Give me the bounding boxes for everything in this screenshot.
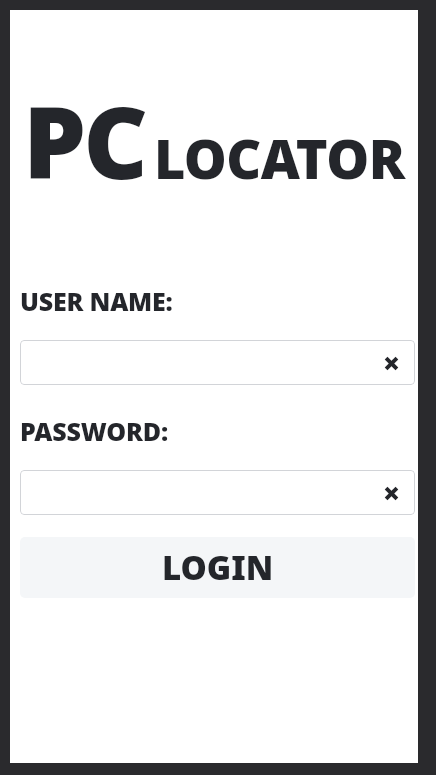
button[interactable]: Password — [20, 470, 415, 515]
button[interactable]: LOGIN — [20, 537, 415, 598]
staticText: PASSWORD: — [20, 414, 168, 448]
staticText: PC LOCATOR — [23, 72, 405, 208]
button[interactable]: Clear text — [374, 476, 408, 510]
staticText: USER NAME: — [20, 284, 173, 318]
button[interactable]: User name — [20, 340, 415, 385]
staticText: LOGIN — [162, 545, 274, 590]
button[interactable]: Clear text — [374, 346, 408, 380]
